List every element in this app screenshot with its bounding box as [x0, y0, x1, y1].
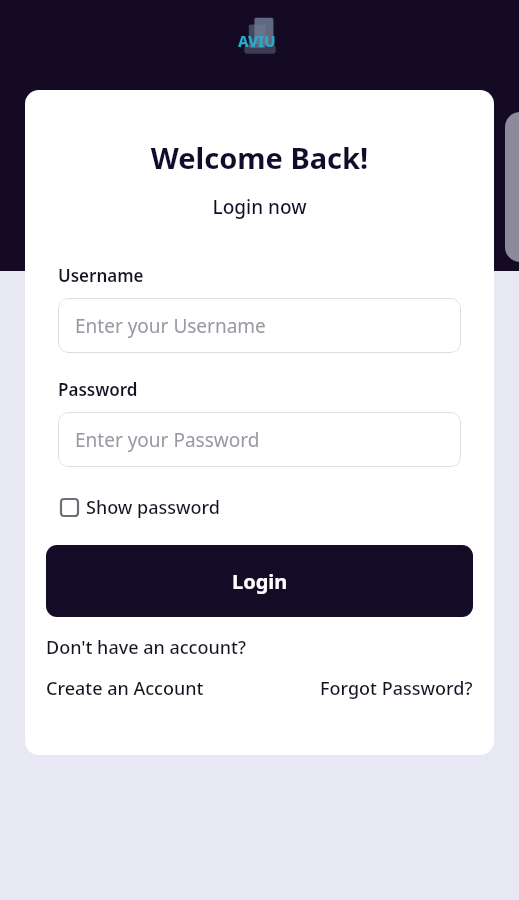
staticText: Show password	[86, 495, 220, 520]
staticText: Login now	[25, 194, 494, 220]
staticText: Username	[58, 264, 144, 287]
button[interactable]: Enter your Password	[58, 412, 461, 467]
staticText: Enter your Password	[75, 427, 260, 453]
button[interactable]: Login	[46, 545, 473, 617]
button[interactable]: Create an Account	[46, 676, 204, 701]
staticText: Forgot Password?	[320, 676, 473, 701]
staticText: Login	[232, 568, 288, 595]
staticText: Password	[58, 378, 138, 401]
staticText: AVIU	[238, 31, 276, 51]
staticText: Don't have an account?	[46, 635, 246, 660]
button[interactable]: Enter your Username	[58, 298, 461, 353]
button[interactable]: Show password	[55, 491, 225, 524]
staticText: Welcome Back!	[25, 138, 494, 177]
staticText: Enter your Username	[75, 313, 266, 339]
button[interactable]: Don't have an account?	[46, 635, 246, 660]
button[interactable]: Forgot Password?	[320, 676, 473, 701]
staticText: Create an Account	[46, 676, 204, 701]
